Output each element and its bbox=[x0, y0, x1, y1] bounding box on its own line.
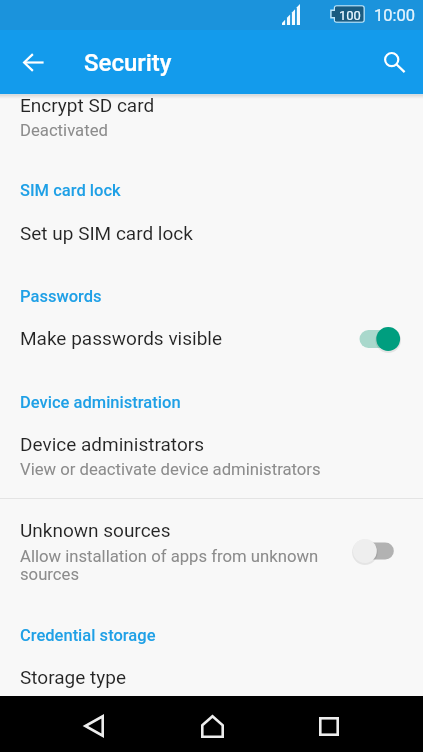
staticText: Storage type bbox=[20, 666, 360, 688]
staticText: Device administrators bbox=[20, 433, 360, 455]
button[interactable] bbox=[0, 216, 423, 254]
staticText: SIM card lock bbox=[20, 181, 360, 200]
staticText: Set up SIM card lock bbox=[20, 222, 360, 244]
staticText: Unknown sources bbox=[20, 519, 360, 541]
button[interactable] bbox=[0, 514, 423, 586]
staticText: Device administration bbox=[20, 393, 360, 412]
button[interactable]: Switch off bbox=[353, 537, 400, 565]
button[interactable] bbox=[0, 660, 423, 696]
staticText: Security bbox=[84, 49, 172, 77]
button[interactable] bbox=[0, 320, 423, 360]
button[interactable]: Search bbox=[367, 30, 423, 94]
staticText: Passwords bbox=[20, 287, 360, 306]
staticText: Make passwords visible bbox=[20, 327, 360, 349]
button[interactable]: Recent apps bbox=[301, 698, 357, 752]
button[interactable]: Navigate up bbox=[5, 30, 61, 94]
staticText: 100 bbox=[339, 8, 361, 23]
button[interactable]: Switch on bbox=[353, 325, 400, 353]
button[interactable] bbox=[0, 94, 423, 146]
staticText: Encrypt SD card bbox=[20, 94, 360, 116]
staticText: Credential storage bbox=[20, 626, 360, 645]
button[interactable] bbox=[0, 428, 423, 484]
button[interactable]: Home bbox=[184, 698, 240, 752]
button[interactable]: Back bbox=[66, 698, 122, 752]
staticText: Allow installation of apps from unknown … bbox=[20, 547, 325, 584]
staticText: Deactivated bbox=[20, 121, 360, 141]
staticText: View or deactivate device administrators bbox=[20, 460, 360, 480]
staticText: 10:00 bbox=[374, 6, 416, 25]
